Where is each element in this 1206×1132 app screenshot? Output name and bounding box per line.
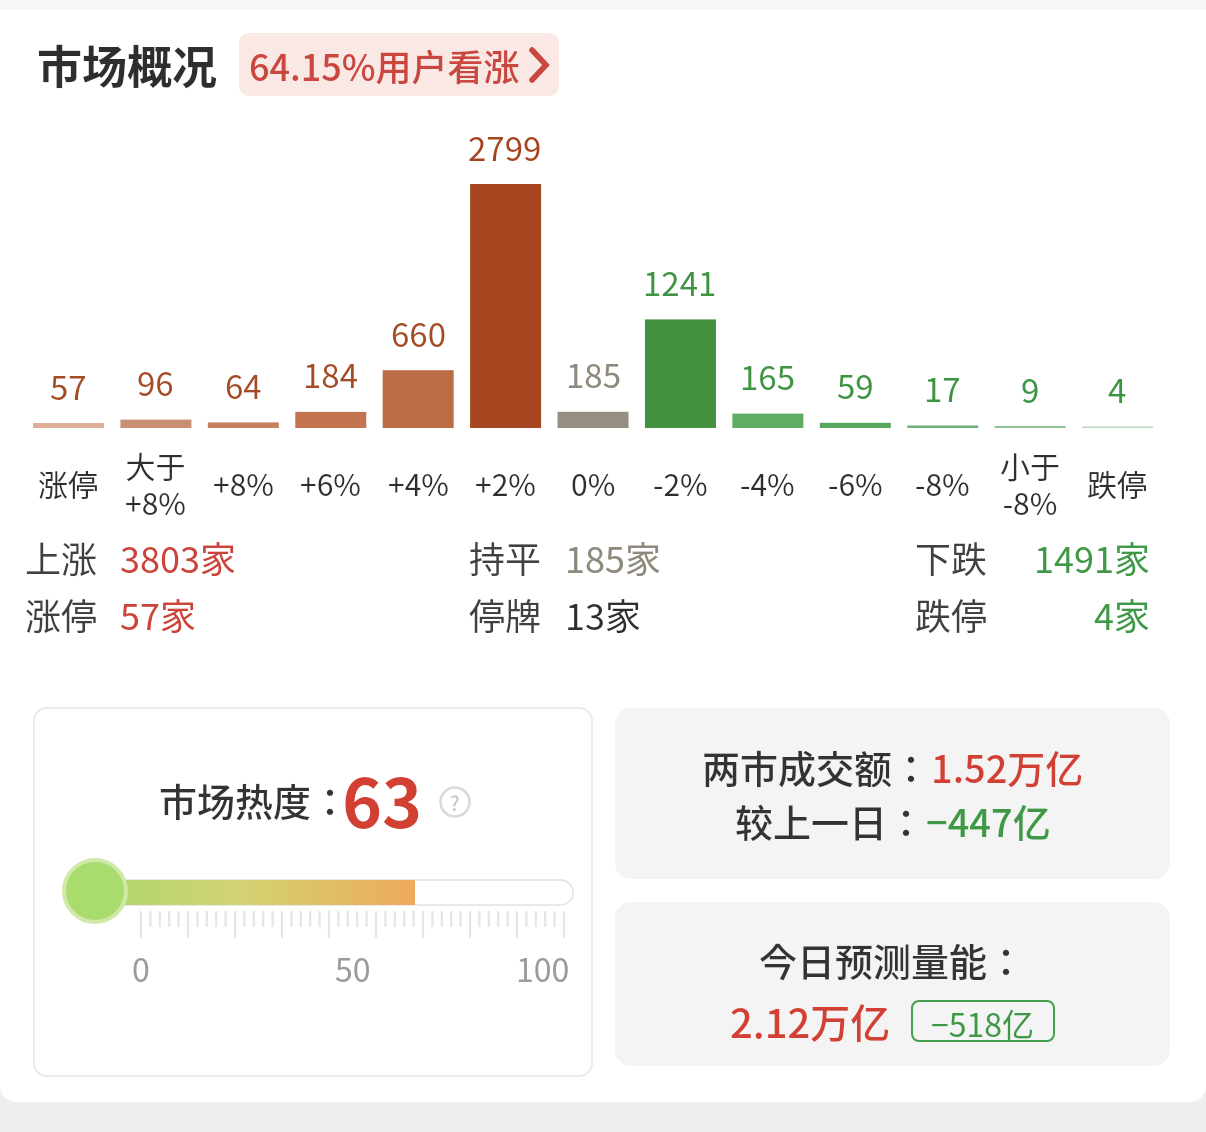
staticText: -8% (915, 461, 970, 504)
staticText: 59 (837, 361, 874, 409)
staticText: 17 (924, 364, 961, 412)
staticText: 市场概况 (37, 32, 218, 97)
staticText: -2% (653, 461, 708, 504)
staticText: 上涨 (25, 531, 98, 583)
button[interactable] (615, 902, 1170, 1066)
staticText: 2.12万亿 (730, 992, 891, 1050)
staticText: 1241 (643, 258, 717, 306)
staticText: 63 (342, 749, 423, 829)
staticText: 3803家 (120, 531, 236, 583)
staticText: 2799 (468, 123, 542, 171)
button[interactable] (33, 707, 593, 1077)
staticText: 小于 -8% (1000, 443, 1060, 523)
staticText: -6% (828, 461, 883, 504)
staticText: 50 (335, 945, 371, 991)
staticText: 下跌 (915, 531, 988, 583)
staticText: -4% (740, 461, 795, 504)
staticText: 57 (50, 362, 87, 410)
staticText: +6% (300, 461, 361, 504)
staticText: 今日预测量能： (759, 932, 1026, 987)
staticText: 市场热度： (159, 772, 350, 827)
staticText: 1491家 (1034, 531, 1150, 583)
staticText: 64.15%用户看涨 (249, 39, 520, 91)
staticText: 大于 +8% (125, 443, 186, 523)
staticText: 两市成交额： (702, 739, 931, 794)
staticText: 较上一日： (735, 793, 926, 848)
staticText: 100 (516, 945, 570, 991)
staticText: 13家 (565, 588, 641, 640)
staticText: −518亿 (931, 1000, 1035, 1042)
staticText: 1.52万亿 (931, 739, 1084, 794)
staticText: +8% (213, 461, 274, 504)
staticText: 184 (303, 350, 358, 398)
staticText: 185家 (565, 531, 661, 583)
staticText: 4家 (1094, 588, 1150, 640)
button[interactable] (439, 786, 471, 818)
staticText: 57家 (120, 588, 196, 640)
staticText: 跌停 (915, 588, 988, 640)
staticText: −447亿 (926, 793, 1051, 848)
staticText: +2% (475, 461, 536, 504)
staticText: 涨停 (25, 588, 98, 640)
staticText: 185 (566, 350, 621, 398)
staticText: 9 (1021, 365, 1040, 413)
button[interactable]: 64.15%用户看涨 (239, 33, 559, 96)
staticText: 64 (225, 361, 262, 409)
staticText: 持平 (469, 531, 542, 583)
staticText: 660 (391, 309, 446, 357)
staticText: +4% (388, 461, 449, 504)
staticText: 停牌 (469, 588, 542, 640)
staticText: 0 (132, 945, 150, 991)
staticText: 0% (571, 461, 616, 504)
staticText: 4 (1108, 365, 1127, 413)
staticText: 165 (740, 352, 795, 400)
button[interactable] (615, 708, 1170, 879)
staticText: ? (450, 788, 460, 817)
staticText: 涨停 (38, 461, 98, 504)
staticText: 跌停 (1087, 461, 1147, 504)
staticText: 96 (137, 358, 174, 406)
